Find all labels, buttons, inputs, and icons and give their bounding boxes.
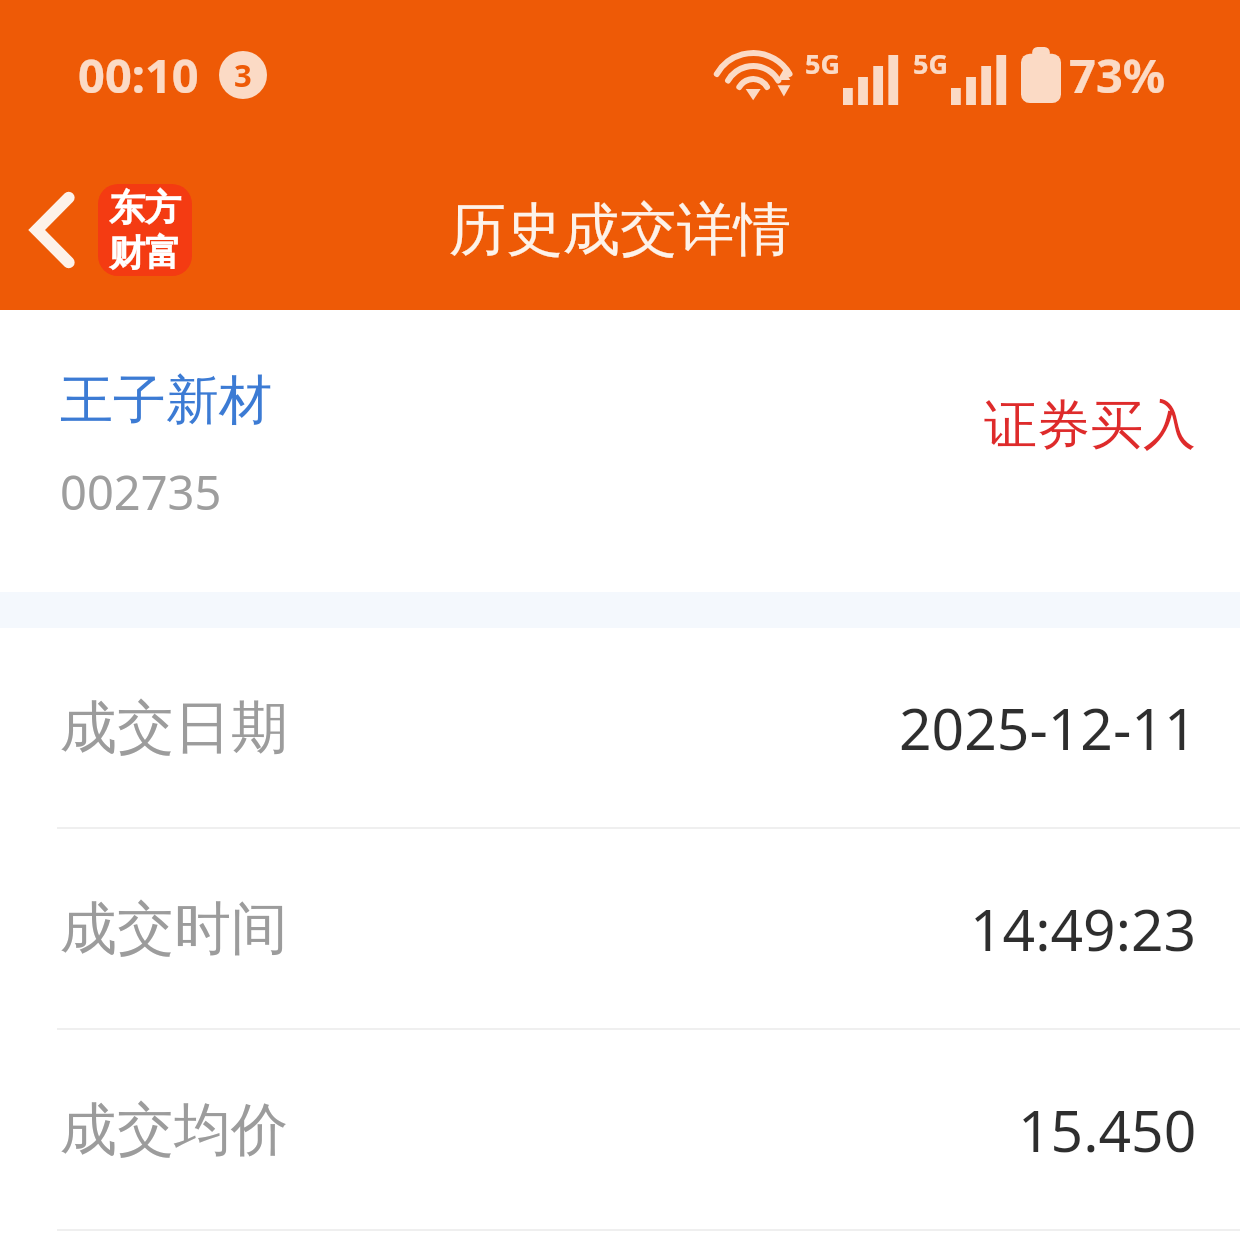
staticText: 王子新材 xyxy=(60,367,272,434)
button[interactable]: 王子新材 xyxy=(0,310,1240,592)
staticText: 5G xyxy=(913,45,948,82)
staticText: 00:10 xyxy=(78,43,199,107)
staticText: 历史成交详情 xyxy=(0,194,1240,266)
staticText: 财富 xyxy=(109,230,181,275)
button[interactable]: Back xyxy=(24,174,198,286)
staticText: 15.450 xyxy=(1018,1091,1197,1169)
staticText: 成交日期 xyxy=(60,692,288,764)
staticText: 成交时间 xyxy=(60,893,288,965)
staticText: 2025-12-11 xyxy=(899,689,1197,767)
button[interactable]: 成交日期 xyxy=(0,628,1240,827)
staticText: 5G xyxy=(805,45,840,82)
button[interactable]: 成交均价 xyxy=(0,1030,1240,1229)
staticText: 73% xyxy=(1069,43,1166,107)
staticText: 证券买入 xyxy=(984,392,1196,459)
staticText: 002735 xyxy=(60,460,222,524)
staticText: 成交均价 xyxy=(60,1094,288,1166)
staticText: 3 xyxy=(234,54,252,96)
staticText: 东方 xyxy=(109,185,181,230)
staticText: 14:49:23 xyxy=(970,890,1197,968)
button[interactable]: 成交时间 xyxy=(0,829,1240,1028)
